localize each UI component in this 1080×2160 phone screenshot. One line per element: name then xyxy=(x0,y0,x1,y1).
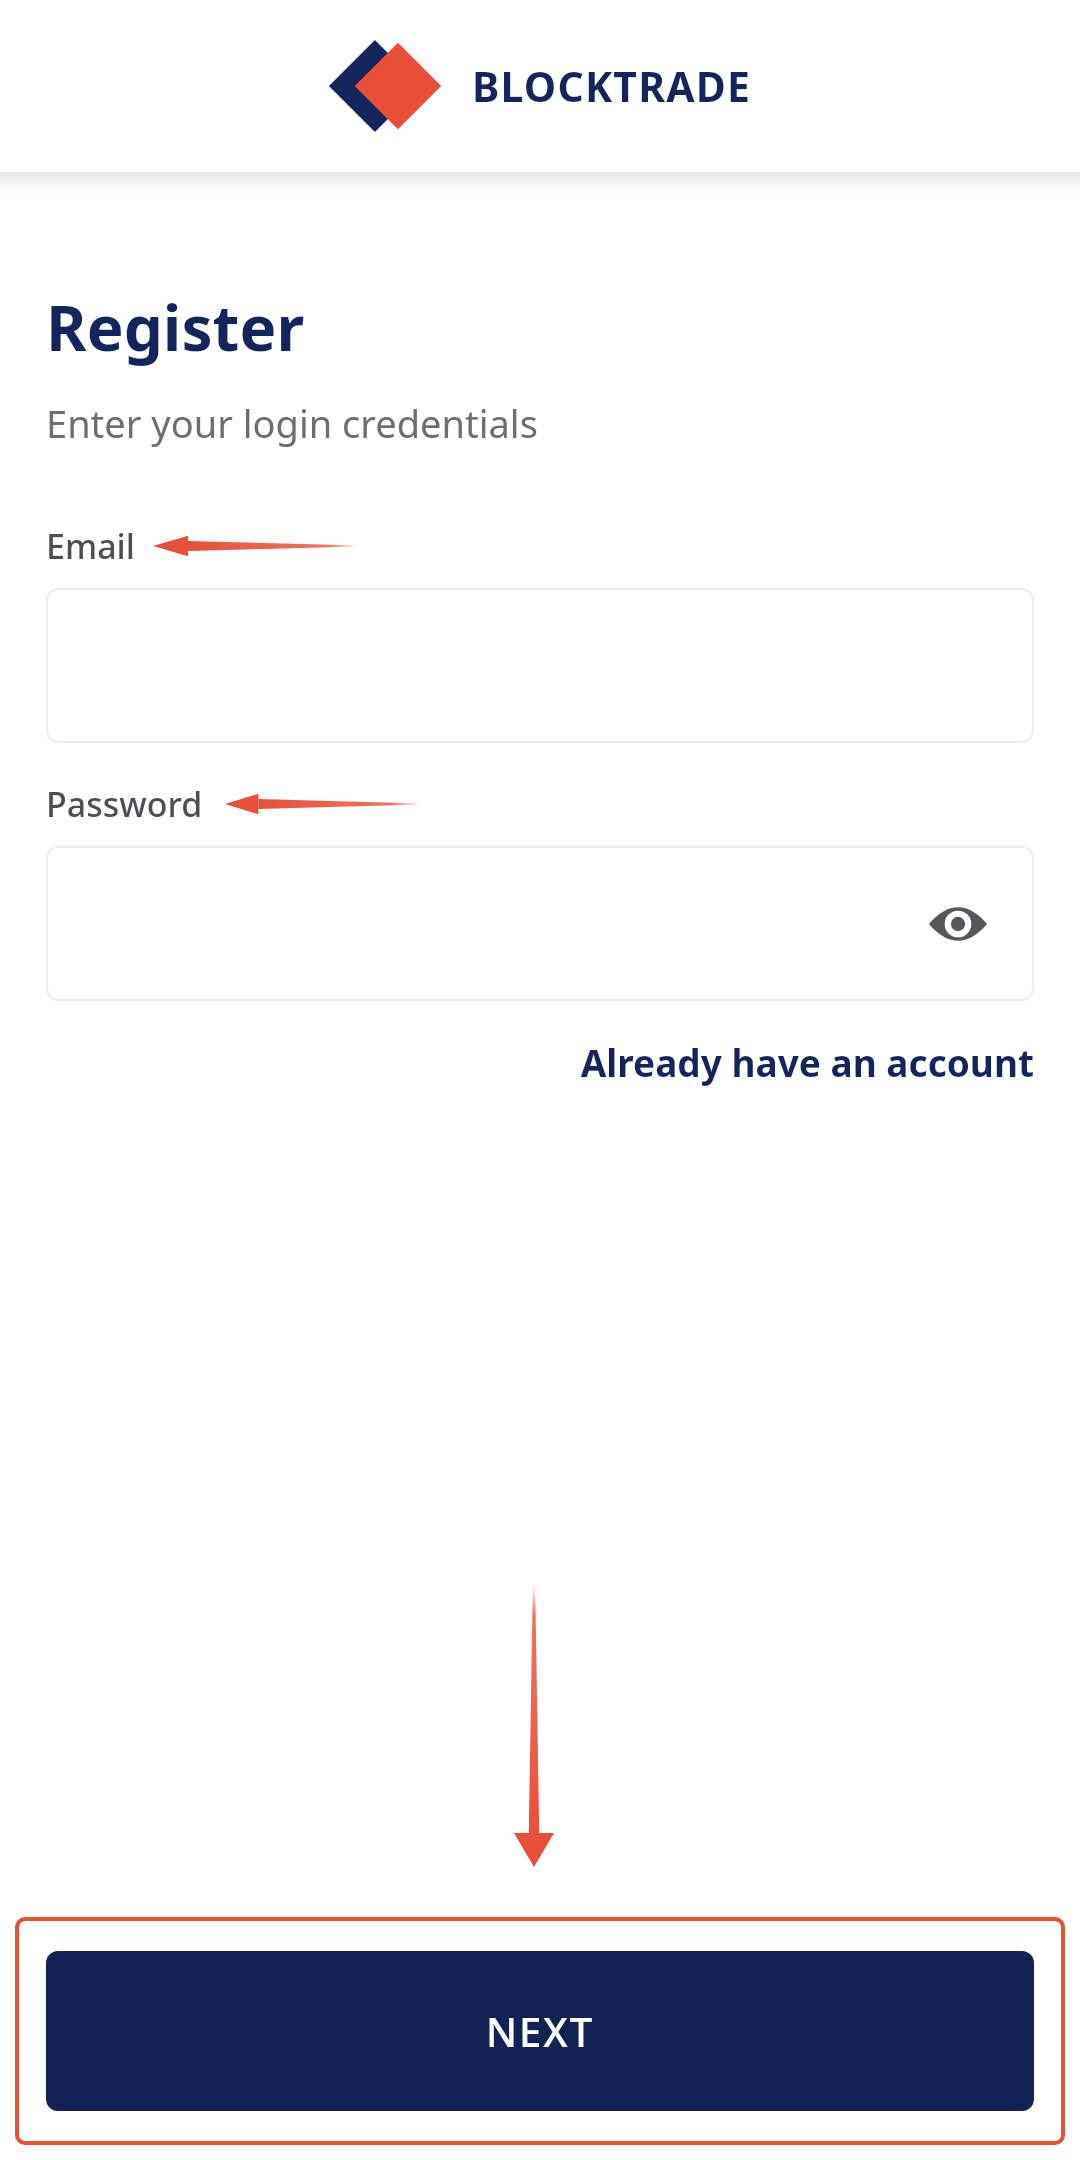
staticText: BLOCKTRADE xyxy=(472,58,752,114)
button[interactable]: Show password xyxy=(46,846,1034,1001)
staticText: Already have an account xyxy=(46,1037,1034,1087)
staticText: NEXT xyxy=(486,2004,595,2058)
button[interactable] xyxy=(46,588,1034,743)
staticText: Password xyxy=(46,781,203,827)
button[interactable]: Show password xyxy=(922,888,994,960)
button[interactable]: Already have an account xyxy=(46,1037,1034,1087)
button[interactable]: NEXT xyxy=(46,1951,1034,2111)
staticText: Enter your login credentials xyxy=(46,397,538,449)
staticText: Email xyxy=(46,523,135,569)
staticText: Register xyxy=(46,285,305,369)
